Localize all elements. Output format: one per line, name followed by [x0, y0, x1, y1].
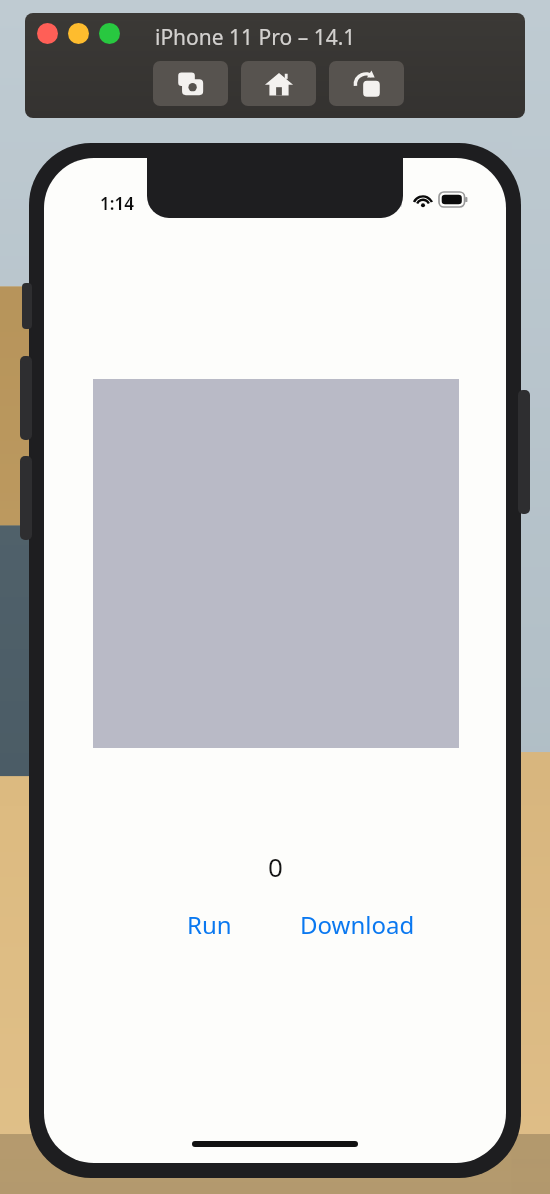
staticText: iPhone 11 Pro – 14.1 [155, 23, 356, 52]
button[interactable]: Zoom [99, 23, 120, 44]
button[interactable]: Close [37, 23, 58, 44]
staticText: 1:14 [100, 192, 134, 215]
staticText: Download [300, 908, 415, 941]
button[interactable]: Minimise [68, 23, 89, 44]
button[interactable]: Download [300, 908, 415, 941]
button[interactable]: Run [187, 908, 232, 941]
button[interactable]: Screenshot [153, 61, 228, 106]
staticText: Run [187, 908, 232, 941]
button[interactable]: Rotate [329, 61, 404, 106]
button[interactable]: Home [241, 61, 316, 106]
staticText: 0 [268, 849, 283, 884]
